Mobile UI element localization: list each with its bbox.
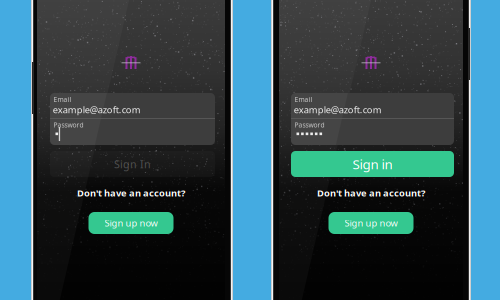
- staticText: Don't have an account?: [317, 187, 425, 199]
- staticText: Password: [294, 120, 324, 129]
- staticText: Password: [53, 120, 83, 129]
- staticText: example@azoft.com: [294, 103, 382, 116]
- staticText: Sign in: [352, 155, 392, 173]
- staticText: example@azoft.com: [53, 103, 141, 116]
- button[interactable]: Sign up now: [88, 212, 173, 234]
- button[interactable]: Sign In: [50, 151, 215, 177]
- staticText: Don't have an account?: [77, 187, 185, 199]
- button[interactable]: Sign in: [291, 151, 454, 177]
- staticText: Sign In: [114, 157, 151, 171]
- staticText: Email: [294, 95, 312, 104]
- staticText: Email: [53, 95, 71, 104]
- button[interactable]: Sign up now: [328, 212, 413, 234]
- staticText: Sign up now: [344, 217, 397, 229]
- staticText: Sign up now: [104, 217, 157, 229]
